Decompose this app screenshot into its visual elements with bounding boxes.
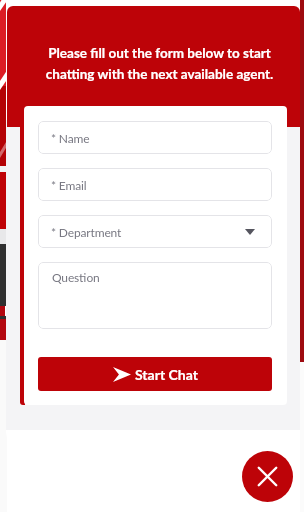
button[interactable]: * Name [38, 121, 272, 154]
staticText: Please fill out the form below to start … [35, 45, 284, 82]
staticText: * Name [51, 131, 90, 145]
staticText: * Department [51, 225, 122, 239]
button[interactable]: Close chat [242, 451, 293, 502]
button[interactable]: * Department [38, 215, 272, 248]
staticText: Question [52, 270, 100, 284]
staticText: Start Chat [135, 366, 198, 383]
button[interactable]: * Email [38, 168, 272, 201]
button[interactable]: Question [38, 262, 272, 329]
button[interactable]: Start Chat [38, 357, 272, 391]
staticText: * Email [51, 178, 87, 192]
